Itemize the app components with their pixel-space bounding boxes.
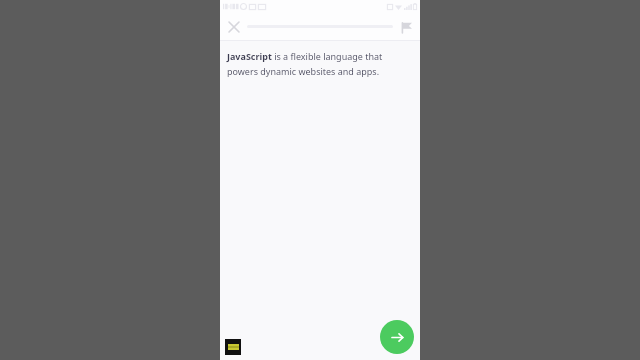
button[interactable]: Keyboard	[225, 339, 241, 355]
button[interactable]: Report	[396, 17, 416, 37]
button[interactable]: Close	[224, 17, 244, 37]
staticText: JavaScript is a flexible language that p…	[227, 50, 410, 77]
button[interactable]: Next	[380, 320, 414, 354]
